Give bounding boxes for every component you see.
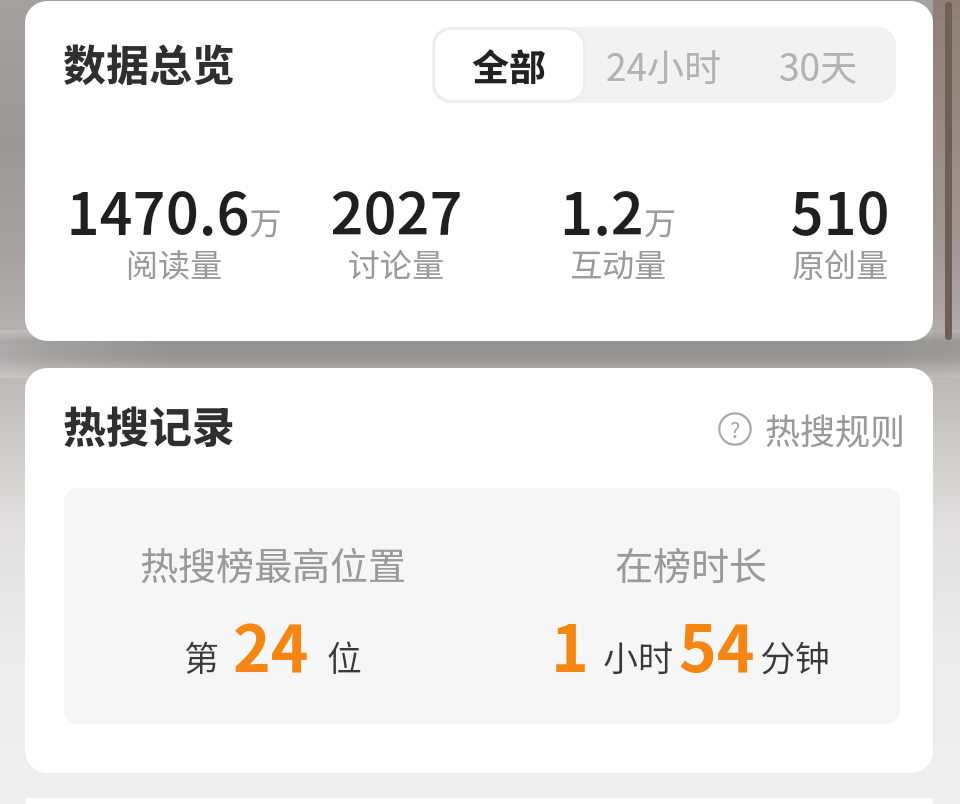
staticText: 阅读量: [126, 240, 223, 286]
staticText: 互动量: [570, 240, 667, 286]
staticText: 数据总览: [63, 31, 235, 93]
staticText: 全部: [472, 38, 546, 92]
staticText: 1470.6万: [66, 169, 282, 252]
staticText: 1: [551, 598, 589, 691]
staticText: 1.2万: [560, 169, 676, 252]
staticText: 24小时: [606, 38, 722, 92]
staticText: 510: [790, 169, 890, 252]
button[interactable]: 24小时: [586, 27, 741, 103]
staticText: 热搜榜最高位置: [140, 536, 407, 591]
staticText: 在榜时长: [615, 536, 768, 591]
button[interactable]: 30天: [741, 27, 896, 103]
staticText: 30天: [779, 38, 858, 92]
staticText: 第: [184, 630, 220, 681]
staticText: 热搜记录: [63, 393, 235, 455]
staticText: ?: [730, 412, 741, 444]
staticText: 原创量: [792, 240, 889, 286]
staticText: 2027: [330, 169, 463, 252]
staticText: 54: [679, 598, 755, 691]
staticText: 热搜规则: [765, 403, 906, 454]
button[interactable]: 全部: [435, 30, 583, 100]
staticText: 位: [327, 630, 363, 681]
staticText: 分钟: [760, 630, 831, 681]
staticText: 24: [233, 598, 309, 691]
button[interactable]: 热搜规则: [718, 403, 906, 454]
staticText: 讨论量: [348, 240, 445, 286]
staticText: 小时: [603, 630, 674, 681]
